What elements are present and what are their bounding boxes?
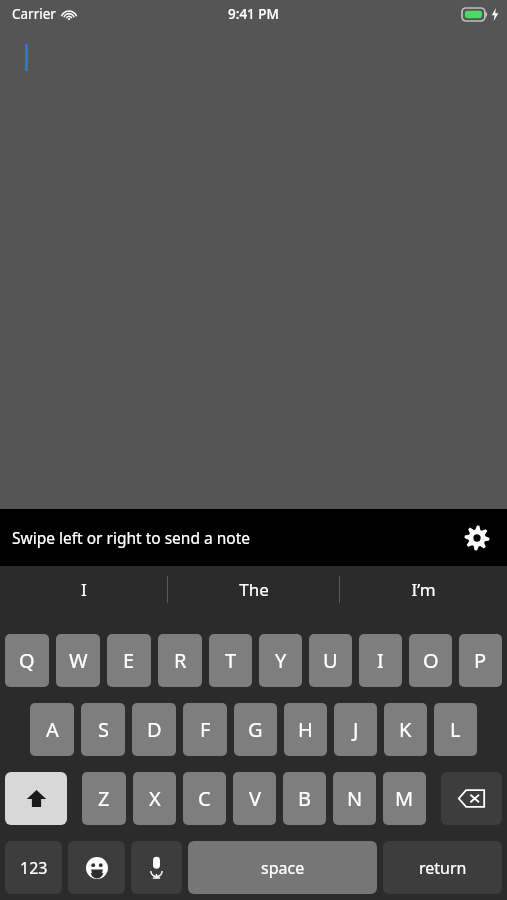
- staticText: W: [69, 647, 88, 674]
- staticText: T: [225, 647, 237, 674]
- button[interactable]: J: [334, 703, 377, 756]
- staticText: Y: [275, 647, 287, 674]
- button[interactable]: I: [359, 634, 402, 687]
- staticText: Carrier: [12, 5, 56, 23]
- button[interactable]: Settings: [457, 518, 497, 558]
- button[interactable]: T: [209, 634, 252, 687]
- staticText: L: [450, 716, 461, 743]
- staticText: E: [123, 647, 135, 674]
- staticText: I: [81, 578, 87, 601]
- button[interactable]: Backspace: [441, 772, 502, 825]
- staticText: B: [298, 785, 311, 812]
- staticText: H: [298, 716, 313, 743]
- button[interactable]: I: [0, 566, 167, 612]
- button[interactable]: D: [132, 703, 176, 756]
- button[interactable]: X: [133, 772, 176, 825]
- staticText: return: [419, 857, 467, 879]
- button[interactable]: B: [283, 772, 326, 825]
- button[interactable]: Dictation: [131, 841, 182, 894]
- button[interactable]: space: [188, 841, 377, 894]
- button[interactable]: P: [459, 634, 502, 687]
- button[interactable]: R: [158, 634, 202, 687]
- button[interactable]: C: [183, 772, 226, 825]
- button[interactable]: K: [384, 703, 427, 756]
- button[interactable]: A: [30, 703, 74, 756]
- staticText: S: [98, 716, 109, 743]
- staticText: D: [147, 716, 162, 743]
- staticText: P: [474, 647, 487, 674]
- button[interactable]: I’m: [340, 566, 507, 612]
- button[interactable]: W: [56, 634, 100, 687]
- button[interactable]: M: [383, 772, 426, 825]
- staticText: U: [323, 647, 338, 674]
- staticText: M: [395, 785, 414, 812]
- button[interactable]: The: [168, 566, 339, 612]
- button[interactable]: Q: [5, 634, 49, 687]
- button[interactable]: L: [434, 703, 477, 756]
- staticText: C: [198, 785, 211, 812]
- button[interactable]: N: [333, 772, 376, 825]
- staticText: I’m: [411, 578, 436, 601]
- button[interactable]: Z: [82, 772, 126, 825]
- staticText: I: [377, 647, 384, 674]
- button[interactable]: O: [409, 634, 452, 687]
- staticText: F: [200, 716, 211, 743]
- staticText: Z: [98, 785, 110, 812]
- button[interactable]: Y: [259, 634, 302, 687]
- staticText: N: [347, 785, 363, 812]
- staticText: K: [399, 716, 412, 743]
- staticText: O: [423, 647, 439, 674]
- button[interactable]: E: [107, 634, 151, 687]
- staticText: A: [46, 716, 59, 743]
- button[interactable]: Emoji: [68, 841, 125, 894]
- button[interactable]: G: [234, 703, 277, 756]
- staticText: space: [261, 857, 305, 879]
- staticText: V: [249, 785, 261, 812]
- staticText: Q: [19, 647, 35, 674]
- staticText: Swipe left or right to send a note: [12, 527, 250, 548]
- button[interactable]: U: [309, 634, 352, 687]
- staticText: G: [248, 716, 263, 743]
- staticText: R: [174, 647, 187, 674]
- button[interactable]: S: [81, 703, 125, 756]
- button[interactable]: V: [233, 772, 276, 825]
- button[interactable]: Shift: [5, 772, 67, 825]
- staticText: X: [149, 785, 161, 812]
- staticText: 9:41 PM: [228, 5, 279, 23]
- staticText: 123: [20, 857, 48, 879]
- button[interactable]: F: [183, 703, 227, 756]
- button[interactable]: 123: [5, 841, 62, 894]
- staticText: J: [353, 716, 359, 743]
- staticText: The: [239, 578, 269, 601]
- button[interactable]: H: [284, 703, 327, 756]
- button[interactable]: return: [383, 841, 502, 894]
